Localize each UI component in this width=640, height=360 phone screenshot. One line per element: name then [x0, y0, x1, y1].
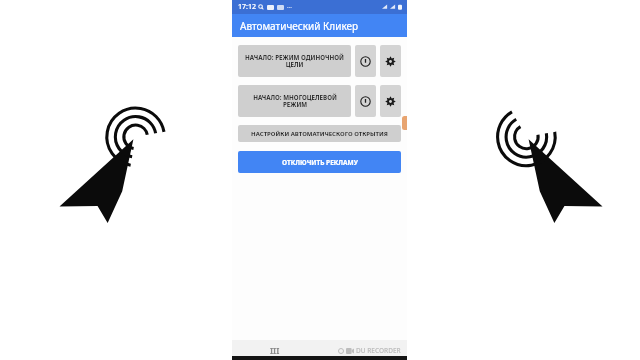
- staticText: НАСТРОЙКИ АВТОМАТИЧЕСКОГО ОТКРЫТИЯ: [251, 130, 388, 138]
- button[interactable]: Settings: [380, 85, 401, 117]
- button[interactable]: III: [270, 345, 280, 356]
- staticText: НАЧАЛО: МНОГОЦЕЛЕВОЙ РЕЖИМ: [253, 93, 337, 109]
- button[interactable]: ОТКЛЮЧИТЬ РЕКЛАМУ: [238, 151, 401, 173]
- staticText: DU RECORDER: [356, 346, 401, 355]
- staticText: Автоматический Кликер: [240, 19, 359, 33]
- button[interactable]: Settings: [380, 45, 401, 77]
- button[interactable]: Info: [355, 45, 376, 77]
- button[interactable]: НАЧАЛО: РЕЖИМ ОДИНОЧНОЙ ЦЕЛИ: [238, 45, 351, 77]
- staticText: ···: [287, 3, 292, 11]
- button[interactable]: НАСТРОЙКИ АВТОМАТИЧЕСКОГО ОТКРЫТИЯ: [238, 125, 401, 142]
- staticText: ОТКЛЮЧИТЬ РЕКЛАМУ: [282, 158, 358, 167]
- staticText: НАЧАЛО: РЕЖИМ ОДИНОЧНОЙ ЦЕЛИ: [245, 53, 344, 69]
- staticText: 17:12: [238, 2, 256, 12]
- button[interactable]: Info: [355, 85, 376, 117]
- button[interactable]: НАЧАЛО: МНОГОЦЕЛЕВОЙ РЕЖИМ: [238, 85, 351, 117]
